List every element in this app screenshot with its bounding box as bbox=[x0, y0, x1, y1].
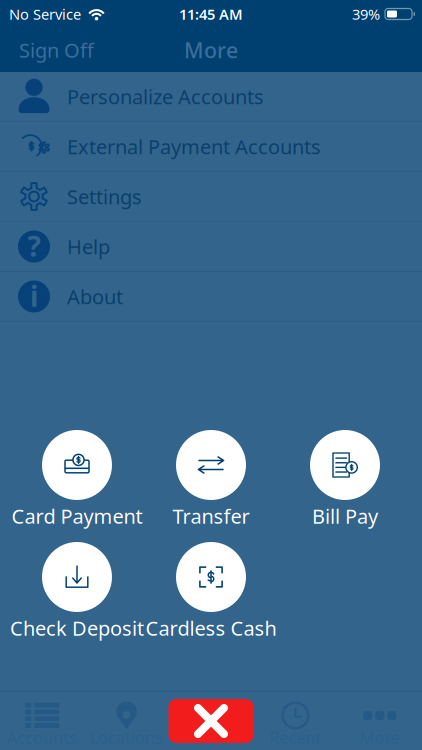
button[interactable]: Bill Pay bbox=[278, 430, 412, 526]
button[interactable]: Card Payment bbox=[10, 430, 144, 526]
staticText: Check Deposit bbox=[10, 615, 144, 641]
button[interactable]: Check Deposit bbox=[10, 542, 144, 638]
staticText: ? bbox=[27, 227, 40, 264]
staticText: More bbox=[184, 36, 238, 64]
button[interactable]: Cardless Cash bbox=[144, 542, 278, 638]
staticText: Personalize Accounts bbox=[67, 83, 264, 110]
staticText: No Service bbox=[9, 4, 81, 24]
staticText: Cardless Cash bbox=[145, 615, 276, 641]
button[interactable]: ? bbox=[0, 222, 422, 272]
button[interactable]: Settings bbox=[0, 172, 422, 222]
button[interactable]: i bbox=[0, 272, 422, 322]
button[interactable]: Personalize Accounts bbox=[0, 72, 422, 122]
staticText: Card Payment bbox=[11, 503, 142, 529]
button[interactable]: Accounts bbox=[0, 692, 84, 750]
button[interactable]: External Payment Accounts bbox=[0, 122, 422, 172]
button[interactable]: Close bbox=[169, 692, 253, 750]
staticText: Help bbox=[67, 233, 110, 260]
button[interactable]: Recent bbox=[253, 692, 338, 750]
staticText: Sign Off bbox=[19, 37, 94, 63]
staticText: 39% bbox=[352, 4, 380, 24]
staticText: i bbox=[30, 277, 38, 314]
staticText: External Payment Accounts bbox=[67, 133, 321, 160]
staticText: Settings bbox=[67, 183, 142, 210]
staticText: Transfer bbox=[172, 503, 249, 529]
staticText: About bbox=[67, 283, 123, 310]
button[interactable]: Transfer bbox=[144, 430, 278, 526]
button[interactable]: Sign Off bbox=[0, 28, 108, 72]
staticText: Bill Pay bbox=[312, 503, 378, 529]
staticText: 11:45 AM bbox=[179, 4, 243, 24]
button[interactable]: Locations bbox=[84, 692, 169, 750]
